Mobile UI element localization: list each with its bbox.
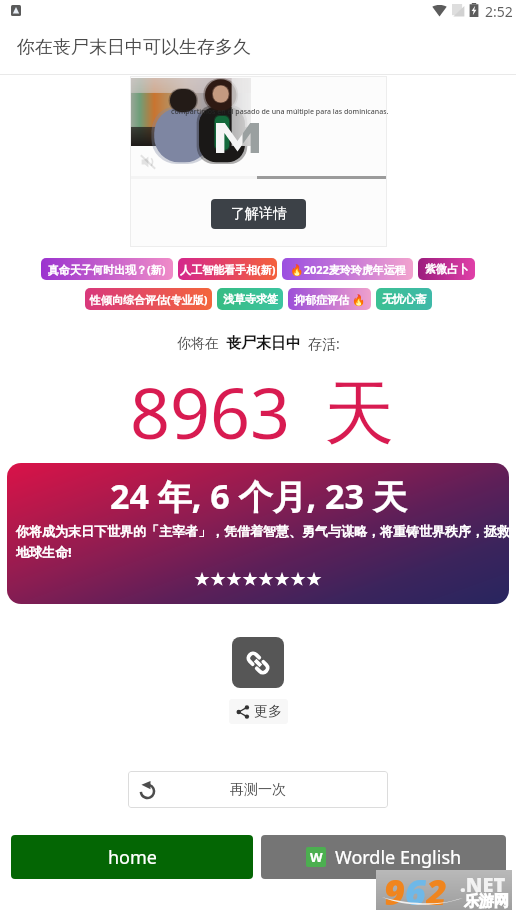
staticText: 抑郁症评估 🔥	[294, 292, 366, 307]
button[interactable]: 抑郁症评估 🔥	[288, 288, 371, 310]
button[interactable]: 紫微占卜	[418, 258, 475, 280]
staticText: 浅草寺求签	[223, 292, 278, 306]
staticText: 丧尸末日中	[226, 334, 301, 353]
button[interactable]: 无忧心斋	[376, 288, 432, 310]
staticText: 了解详情	[231, 205, 287, 223]
staticText: 紫微占卜	[425, 262, 469, 276]
staticText: 2:52	[485, 2, 513, 21]
staticText: 24 年, 6 个月, 23 天	[110, 473, 407, 519]
button[interactable]: compartimos en el pasado de una múltiple…	[130, 76, 387, 247]
button[interactable]: 真命天子何时出现？(新)	[41, 258, 173, 280]
staticText: 2	[426, 867, 447, 907]
staticText: 再测一次	[230, 781, 286, 799]
staticText: 你将在	[177, 335, 219, 353]
staticText: 真命天子何时出现？(新)	[48, 262, 166, 277]
button[interactable]: 🔥2022麦玲玲虎年运程	[282, 258, 413, 280]
button[interactable]: W	[261, 835, 506, 879]
staticText: compartimos en el pasado de una múltiple…	[171, 107, 389, 117]
staticText: W	[310, 848, 323, 866]
button[interactable]: 更多	[229, 699, 288, 724]
button[interactable]: 24 年, 6 个月, 23 天	[7, 463, 509, 604]
button[interactable]: home	[11, 835, 253, 879]
staticText: 9	[384, 867, 405, 907]
staticText: 8963	[130, 364, 291, 459]
button[interactable]: 复制链接	[232, 637, 284, 688]
staticText: 乐游网	[464, 892, 509, 911]
staticText: 人工智能看手相(新)	[180, 262, 276, 277]
staticText: 性倾向综合评估(专业版)	[90, 292, 208, 307]
button[interactable]: 再测一次	[128, 771, 388, 808]
staticText: 天	[324, 370, 394, 458]
staticText: 6	[405, 867, 426, 907]
staticText: 更多	[254, 703, 282, 721]
button[interactable]: 了解详情	[211, 199, 306, 229]
staticText: 🔥2022麦玲玲虎年运程	[290, 262, 406, 277]
staticText: Wordle English	[335, 845, 462, 870]
staticText: 无忧心斋	[382, 292, 426, 306]
staticText: 存活:	[308, 334, 340, 353]
staticText: 你在丧尸末日中可以生存多久	[17, 36, 251, 59]
staticText: home	[108, 845, 157, 870]
button[interactable]: 浅草寺求签	[217, 288, 283, 310]
button[interactable]: 人工智能看手相(新)	[178, 258, 277, 280]
button[interactable]: 性倾向综合评估(专业版)	[85, 288, 212, 310]
staticText: .NET	[460, 871, 506, 898]
staticText: 你将成为末日下世界的「主宰者」，凭借着智慧、勇气与谋略，将重铸世界秩序，拯救地球…	[16, 523, 509, 561]
